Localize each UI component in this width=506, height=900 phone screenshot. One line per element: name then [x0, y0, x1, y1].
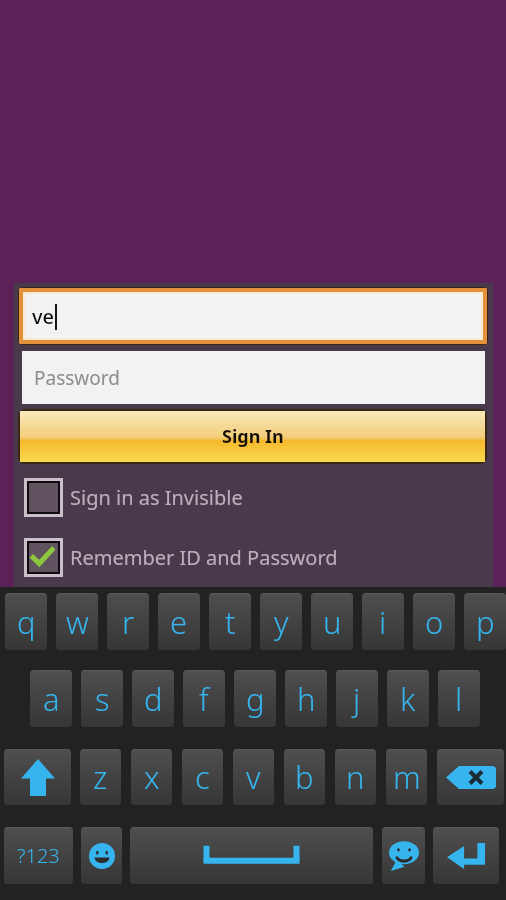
staticText: m [393, 756, 421, 798]
staticText: s [95, 678, 110, 720]
button[interactable]: Enter [433, 827, 499, 884]
staticText: z [93, 756, 108, 798]
button[interactable]: Space [130, 827, 373, 884]
button[interactable]: v [233, 749, 274, 805]
button[interactable]: o [413, 593, 455, 650]
button[interactable]: y [260, 593, 302, 650]
button[interactable]: w [56, 593, 98, 650]
staticText: f [199, 678, 209, 720]
button[interactable]: u [311, 593, 353, 650]
button[interactable]: r [107, 593, 149, 650]
button[interactable]: Delete [437, 749, 504, 805]
button[interactable]: m [386, 749, 427, 805]
staticText: i [379, 601, 387, 643]
button[interactable]: ve [25, 294, 481, 338]
staticText: k [400, 678, 416, 720]
staticText: b [295, 756, 314, 798]
button[interactable]: ?123 [4, 827, 73, 884]
button[interactable]: h [285, 670, 327, 727]
staticText: x [144, 756, 160, 798]
button[interactable]: Password [22, 351, 485, 404]
staticText: r [122, 601, 135, 643]
staticText: ?123 [17, 842, 60, 869]
staticText: q [17, 601, 36, 643]
button[interactable]: q [5, 593, 47, 650]
button[interactable]: a [30, 670, 72, 727]
button[interactable]: k [387, 670, 429, 727]
button[interactable]: n [335, 749, 376, 805]
staticText: n [346, 756, 365, 798]
button[interactable]: Emoji [81, 827, 122, 884]
staticText: u [323, 601, 342, 643]
staticText: p [476, 601, 495, 643]
button[interactable]: g [234, 670, 276, 727]
staticText: o [425, 601, 444, 643]
button[interactable]: Stickers [382, 827, 425, 884]
staticText: j [353, 678, 361, 720]
staticText: Remember ID and Password [70, 544, 338, 571]
staticText: t [225, 601, 236, 643]
button[interactable]: b [284, 749, 325, 805]
button[interactable]: f [183, 670, 225, 727]
button[interactable]: x [131, 749, 172, 805]
staticText: d [144, 678, 163, 720]
button[interactable]: p [464, 593, 506, 650]
button[interactable]: s [81, 670, 123, 727]
button[interactable]: j [336, 670, 378, 727]
staticText: c [195, 756, 210, 798]
button[interactable]: e [158, 593, 200, 650]
button[interactable]: t [209, 593, 251, 650]
staticText: a [43, 678, 60, 720]
staticText: y [274, 601, 289, 643]
button[interactable]: i [362, 593, 404, 650]
button[interactable]: d [132, 670, 174, 727]
button[interactable]: Sign In [20, 411, 485, 462]
staticText: h [297, 678, 316, 720]
button[interactable]: c [182, 749, 223, 805]
button[interactable]: Shift [4, 749, 71, 805]
staticText: v [246, 756, 261, 798]
staticText: l [455, 678, 463, 720]
staticText: Sign In [222, 424, 284, 449]
staticText: Sign in as Invisible [70, 484, 243, 511]
staticText: Password [34, 365, 120, 391]
staticText: ve [32, 303, 55, 330]
staticText: g [246, 678, 265, 720]
staticText: e [170, 601, 188, 643]
button[interactable]: z [80, 749, 121, 805]
button[interactable]: Sign in as Invisible [20, 473, 243, 521]
button[interactable]: l [438, 670, 480, 727]
button[interactable]: Remember ID and Password [20, 533, 338, 581]
staticText: w [66, 601, 89, 643]
